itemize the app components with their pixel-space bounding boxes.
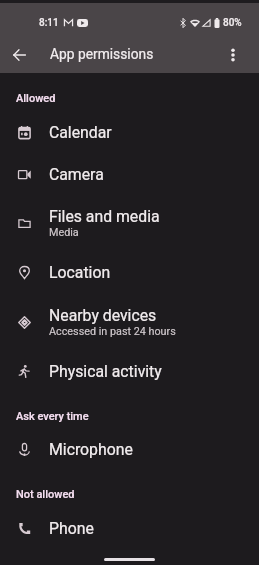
- button[interactable]: Camera: [0, 154, 259, 194]
- button[interactable]: More options: [219, 41, 246, 68]
- button[interactable]: Nearby devices: [0, 299, 259, 345]
- button[interactable]: Physical activity: [0, 351, 259, 391]
- staticText: Allowed: [16, 92, 56, 105]
- staticText: Phone: [49, 519, 94, 538]
- button[interactable]: Phone: [0, 508, 259, 548]
- button[interactable]: Microphone: [0, 429, 259, 469]
- staticText: Files and media: [49, 207, 160, 226]
- staticText: Media: [49, 226, 79, 239]
- staticText: Ask every time: [16, 410, 89, 423]
- staticText: 80%: [223, 17, 242, 29]
- button[interactable]: Back: [6, 41, 33, 68]
- staticText: Microphone: [49, 440, 133, 459]
- staticText: Camera: [49, 165, 104, 184]
- button[interactable]: Location: [0, 252, 259, 292]
- staticText: 8:11: [39, 17, 59, 29]
- staticText: Calendar: [49, 123, 112, 142]
- staticText: App permissions: [50, 46, 154, 62]
- staticText: Physical activity: [49, 362, 162, 381]
- staticText: Accessed in past 24 hours: [49, 325, 176, 338]
- button[interactable]: Files and media: [0, 200, 259, 246]
- button[interactable]: Calendar: [0, 112, 259, 152]
- staticText: Nearby devices: [49, 306, 157, 325]
- staticText: Location: [49, 263, 111, 282]
- staticText: Not allowed: [16, 488, 75, 501]
